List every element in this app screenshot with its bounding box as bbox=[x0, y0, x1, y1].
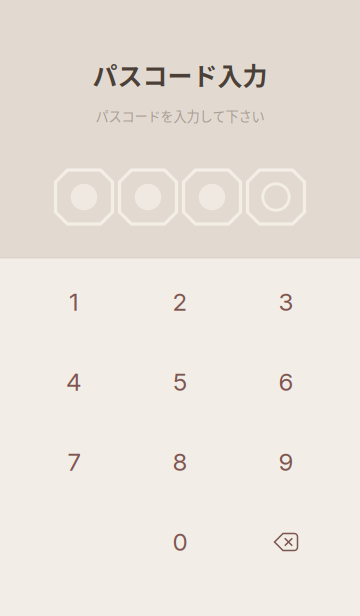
staticText: 0 bbox=[172, 527, 187, 557]
staticText: 5 bbox=[173, 367, 187, 397]
staticText: 1 bbox=[69, 287, 79, 317]
button[interactable]: 5 bbox=[127, 342, 233, 422]
button[interactable]: 3 bbox=[233, 262, 339, 342]
button[interactable]: 6 bbox=[233, 342, 339, 422]
staticText: パスコード入力 bbox=[92, 57, 267, 93]
staticText: 2 bbox=[172, 287, 187, 317]
button[interactable]: 0 bbox=[127, 502, 233, 582]
staticText: 7 bbox=[67, 447, 80, 477]
button[interactable]: 1 bbox=[21, 262, 127, 342]
staticText: 4 bbox=[66, 367, 82, 397]
button[interactable]: 9 bbox=[233, 422, 339, 502]
staticText: 8 bbox=[172, 447, 187, 477]
button[interactable]: 7 bbox=[21, 422, 127, 502]
staticText: パスコードを入力して下さい bbox=[95, 106, 264, 125]
staticText: 6 bbox=[278, 367, 293, 397]
button[interactable]: 2 bbox=[127, 262, 233, 342]
staticText: 9 bbox=[278, 447, 293, 477]
button[interactable]: 8 bbox=[127, 422, 233, 502]
button[interactable]: 4 bbox=[21, 342, 127, 422]
button[interactable]: Delete bbox=[233, 502, 339, 582]
staticText: 3 bbox=[278, 287, 293, 317]
